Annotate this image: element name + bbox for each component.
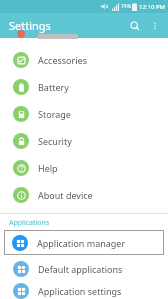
staticText: Application settings <box>38 285 122 297</box>
button[interactable]: Default applications <box>0 255 168 282</box>
button[interactable]: Application settings <box>0 282 168 299</box>
button[interactable]: Battery <box>0 73 168 100</box>
button[interactable]: Application manager <box>4 230 164 255</box>
button[interactable]: Search <box>124 15 146 37</box>
button[interactable]: Accessories <box>0 46 168 73</box>
staticText: 74% <box>121 3 131 10</box>
staticText: Default applications <box>38 263 123 275</box>
button[interactable]: Storage <box>0 100 168 127</box>
staticText: Settings <box>9 18 51 33</box>
button[interactable]: Help <box>0 154 168 181</box>
staticText: Accessories <box>38 54 87 66</box>
button[interactable]: About device <box>0 181 168 208</box>
staticText: Help <box>38 162 58 174</box>
staticText: About device <box>38 189 93 201</box>
button[interactable] <box>0 38 168 46</box>
staticText: Security <box>38 135 72 147</box>
staticText: Application manager <box>37 237 126 249</box>
staticText: Battery <box>38 81 69 93</box>
staticText: 12:10 PM <box>139 3 165 11</box>
staticText: Applications <box>9 218 50 228</box>
staticText: Storage <box>38 108 71 120</box>
button[interactable]: Security <box>0 127 168 154</box>
button[interactable]: More options <box>146 17 164 35</box>
